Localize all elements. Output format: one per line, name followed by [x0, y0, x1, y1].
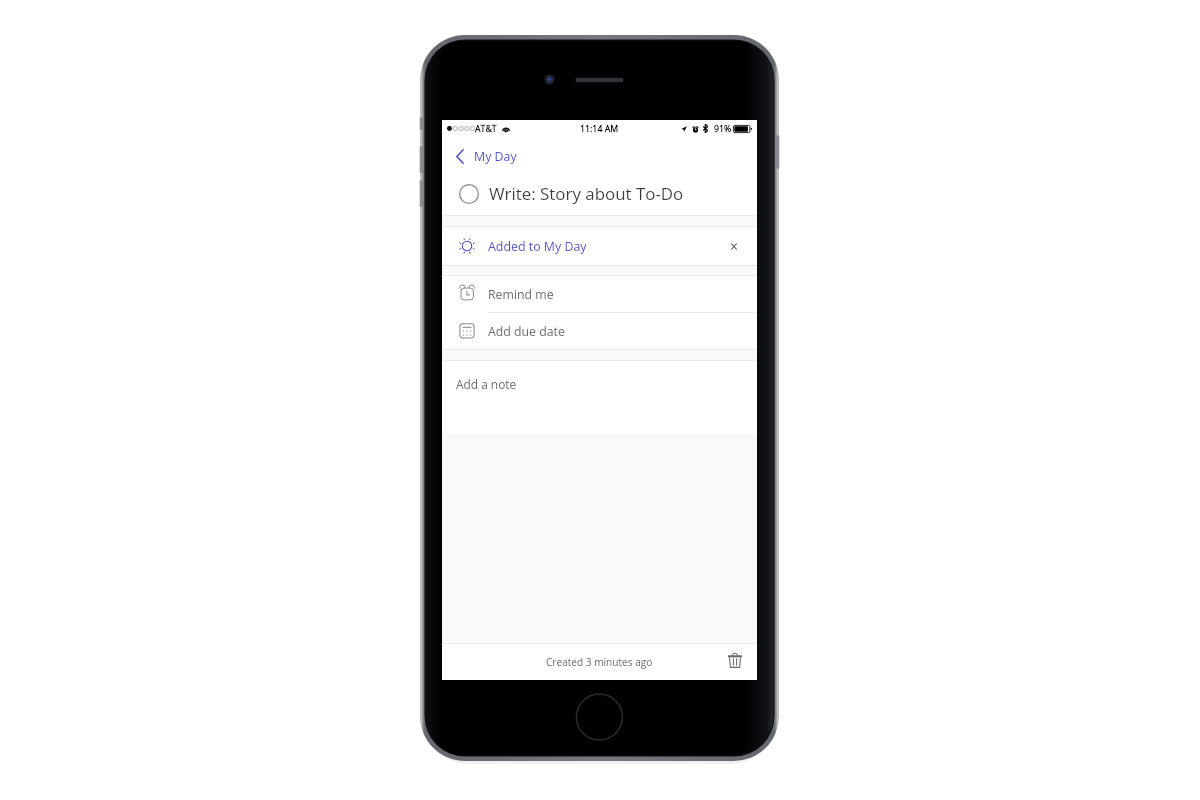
button[interactable]: Remove from My Day — [724, 236, 744, 256]
button[interactable]: Add a note — [442, 361, 757, 434]
button[interactable]: Remind me — [442, 276, 757, 312]
button[interactable]: Back to My Day — [442, 137, 498, 173]
staticText: 91% — [714, 123, 732, 135]
button[interactable]: Add due date — [442, 313, 757, 349]
staticText: Created 3 minutes ago — [546, 655, 653, 669]
button[interactable]: Added to My Day — [442, 227, 757, 265]
staticText: My Day — [474, 148, 517, 165]
button[interactable]: Write: Story about To-Do — [442, 173, 757, 215]
staticText: Added to My Day — [488, 238, 587, 255]
staticText: AT&T — [475, 123, 497, 135]
staticText: 11:14 AM — [580, 123, 619, 135]
staticText: Add due date — [488, 323, 565, 340]
staticText: Add a note — [456, 376, 517, 392]
staticText: Remind me — [488, 286, 554, 303]
button[interactable]: Delete task — [724, 651, 746, 673]
staticText: Write: Story about To-Do — [489, 182, 684, 205]
